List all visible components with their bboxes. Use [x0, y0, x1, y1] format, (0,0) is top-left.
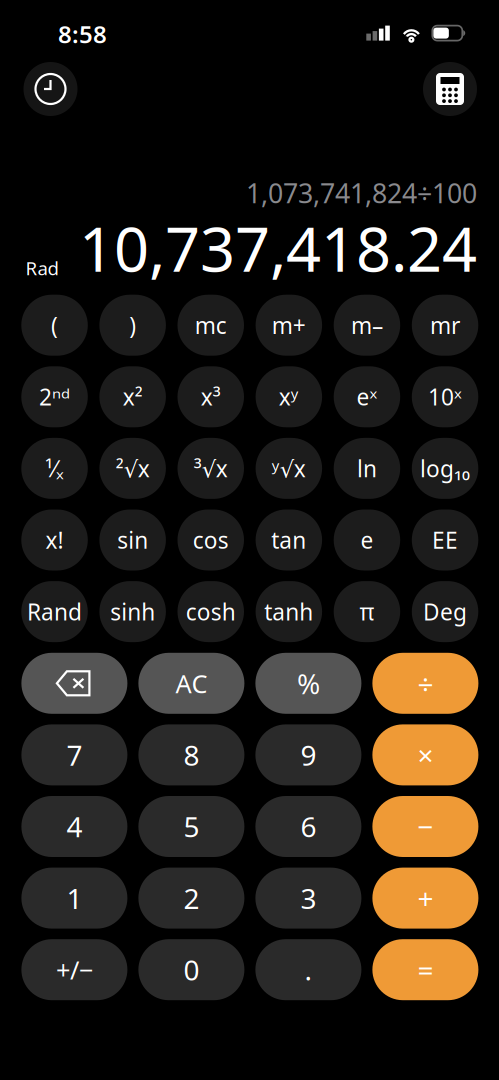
staticText: ln — [357, 453, 377, 483]
staticText: Rad — [25, 256, 58, 280]
button[interactable]: sin — [99, 509, 166, 570]
button[interactable]: Deg — [412, 581, 478, 642]
staticText: ¹⁄ₓ — [45, 453, 64, 483]
button[interactable]: % — [255, 653, 361, 714]
button[interactable]: tan — [256, 509, 322, 570]
staticText: mc — [195, 310, 227, 340]
button[interactable]: +/− — [21, 939, 127, 1000]
button[interactable]: . — [255, 939, 361, 1000]
staticText: % — [297, 665, 320, 702]
button[interactable]: 9 — [255, 724, 361, 785]
staticText: tan — [271, 525, 306, 555]
staticText: ³√x — [194, 453, 228, 483]
button[interactable]: ln — [334, 438, 400, 499]
staticText: ( — [51, 310, 58, 340]
button[interactable]: tanh — [256, 581, 322, 642]
button[interactable]: x³ — [177, 366, 244, 427]
staticText: 4 — [66, 808, 82, 845]
button[interactable]: xʸ — [256, 366, 322, 427]
staticText: Deg — [423, 596, 467, 627]
button[interactable]: mr — [412, 295, 478, 356]
staticText: x³ — [201, 382, 221, 412]
button[interactable]: = — [372, 939, 478, 1000]
staticText: 10,737,418.24 — [79, 207, 477, 289]
button[interactable]: e — [334, 509, 400, 570]
button[interactable]: 0 — [138, 939, 244, 1000]
button[interactable]: ( — [21, 295, 88, 356]
staticText: 5 — [183, 808, 199, 845]
staticText: . — [304, 951, 312, 988]
button[interactable]: m+ — [256, 295, 322, 356]
button[interactable]: x! — [21, 509, 88, 570]
button[interactable]: AC — [138, 653, 244, 714]
staticText: 7 — [66, 736, 82, 773]
button[interactable]: π — [334, 581, 400, 642]
staticText: 3 — [300, 879, 316, 917]
staticText: eˣ — [356, 382, 377, 412]
staticText: log₁₀ — [420, 453, 470, 483]
staticText: AC — [175, 666, 207, 700]
staticText: 10ˣ — [428, 382, 462, 412]
staticText: sinh — [110, 596, 155, 627]
staticText: xʸ — [279, 382, 299, 412]
staticText: 9 — [300, 736, 316, 773]
button[interactable]: 4 — [21, 796, 127, 857]
button[interactable]: − — [372, 796, 478, 857]
staticText: cosh — [186, 596, 236, 627]
staticText: 1 — [66, 879, 82, 917]
staticText: 6 — [300, 808, 316, 845]
button[interactable]: cosh — [177, 581, 244, 642]
button[interactable]: 10ˣ — [412, 366, 478, 427]
button[interactable]: 1 — [21, 868, 127, 929]
staticText: π — [359, 596, 374, 627]
button[interactable]: EE — [412, 509, 478, 570]
button[interactable]: ʸ√x — [256, 438, 322, 499]
button[interactable]: log₁₀ — [412, 438, 478, 499]
button[interactable]: ³√x — [177, 438, 244, 499]
button[interactable]: 2ⁿᵈ — [21, 366, 88, 427]
button[interactable]: cos — [177, 509, 244, 570]
staticText: ÷ — [417, 665, 433, 702]
button[interactable]: + — [372, 868, 478, 929]
button[interactable]: ¹⁄ₓ — [21, 438, 88, 499]
staticText: m– — [351, 310, 383, 340]
staticText: cos — [193, 525, 229, 555]
staticText: tanh — [264, 596, 313, 627]
staticText: + — [417, 879, 433, 917]
button[interactable]: 5 — [138, 796, 244, 857]
button[interactable]: Delete — [21, 653, 127, 714]
staticText: 8 — [183, 736, 199, 773]
button[interactable]: x² — [99, 366, 166, 427]
button[interactable]: ²√x — [99, 438, 166, 499]
button[interactable]: × — [372, 724, 478, 785]
button[interactable]: ) — [99, 295, 166, 356]
button[interactable]: Calculator Mode — [423, 62, 477, 116]
button[interactable]: Rand — [21, 581, 88, 642]
staticText: ) — [129, 310, 136, 340]
staticText: EE — [432, 525, 458, 555]
staticText: Rand — [27, 596, 82, 627]
button[interactable]: ÷ — [372, 653, 478, 714]
staticText: 2 — [183, 879, 199, 917]
staticText: e — [360, 525, 373, 555]
button[interactable]: 2 — [138, 868, 244, 929]
button[interactable]: mc — [177, 295, 244, 356]
staticText: = — [417, 951, 433, 988]
staticText: 8:58 — [58, 18, 107, 50]
button[interactable]: m– — [334, 295, 400, 356]
staticText: x! — [45, 525, 63, 555]
staticText: 0 — [183, 951, 199, 988]
staticText: sin — [117, 525, 148, 555]
button[interactable]: sinh — [99, 581, 166, 642]
button[interactable]: 7 — [21, 724, 127, 785]
staticText: 1,073,741,824÷100 — [246, 175, 477, 211]
button[interactable]: eˣ — [334, 366, 400, 427]
staticText: ²√x — [116, 453, 150, 483]
button[interactable]: Calculation History — [23, 62, 77, 116]
staticText: − — [417, 808, 433, 845]
staticText: m+ — [272, 310, 306, 340]
button[interactable]: 6 — [255, 796, 361, 857]
button[interactable]: 8 — [138, 724, 244, 785]
button[interactable]: 3 — [255, 868, 361, 929]
staticText: × — [417, 736, 433, 773]
